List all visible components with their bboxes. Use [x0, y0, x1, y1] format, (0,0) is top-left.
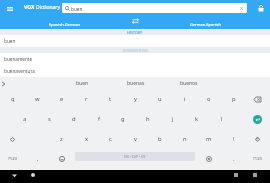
button[interactable]: r: [74, 89, 99, 109]
staticText: t: [109, 95, 112, 103]
staticText: c: [109, 135, 112, 143]
button[interactable]: z: [49, 129, 74, 149]
staticText: s: [48, 115, 51, 123]
button[interactable]: i: [172, 89, 197, 109]
staticText: .: [233, 155, 235, 163]
button[interactable]: d: [61, 109, 86, 129]
button[interactable]: Settings: [196, 149, 221, 169]
staticText: w: [35, 95, 40, 103]
button[interactable]: w: [25, 89, 50, 109]
button[interactable]: Spanish-German: [0, 15, 129, 29]
staticText: q: [11, 95, 15, 103]
button[interactable]: o: [196, 89, 221, 109]
button[interactable]: Recent apps: [251, 171, 259, 179]
button[interactable]: m: [196, 129, 221, 149]
staticText: e: [60, 95, 64, 103]
button[interactable]: x: [74, 129, 99, 149]
button[interactable]: ?: [245, 129, 270, 149]
button[interactable]: Clear search: [239, 6, 244, 11]
button[interactable]: buenos: [162, 77, 215, 89]
button[interactable]: t: [98, 89, 123, 109]
button[interactable]: q: [0, 89, 25, 109]
staticText: r: [85, 95, 88, 103]
button[interactable]: Backspace: [245, 89, 270, 109]
staticText: z: [60, 135, 63, 143]
button[interactable]: Navigation menu: [4, 3, 16, 15]
staticText: Dictionary: [36, 4, 60, 11]
button[interactable]: German-Spanish: [141, 15, 270, 29]
button[interactable]: buen: [0, 35, 270, 47]
staticText: p: [232, 95, 236, 103]
button[interactable]: ?123: [0, 149, 25, 169]
staticText: buenas: [127, 80, 145, 87]
button[interactable]: Enter: [245, 109, 270, 129]
button[interactable]: Shift: [0, 129, 25, 149]
staticText: VOX: [24, 4, 35, 11]
staticText: u: [158, 95, 162, 103]
button[interactable]: buen: [62, 3, 247, 13]
staticText: ?: [256, 135, 259, 143]
button[interactable]: v: [123, 129, 148, 149]
staticText: ?123: [8, 156, 18, 162]
button[interactable]: h: [135, 109, 160, 129]
staticText: m: [206, 135, 212, 143]
staticText: a: [23, 115, 27, 123]
button[interactable]: Emoji: [49, 149, 74, 169]
staticText: h: [146, 115, 150, 123]
staticText: l: [221, 115, 223, 123]
button[interactable]: Hide keyboard: [10, 171, 18, 179]
button[interactable]: Swap languages: [129, 15, 141, 27]
staticText: SUGGESTIONS: [123, 48, 148, 53]
staticText: ,: [37, 155, 39, 163]
button[interactable]: Back: [29, 171, 37, 179]
staticText: o: [207, 95, 211, 103]
button[interactable]: k: [184, 109, 209, 129]
button[interactable]: g: [110, 109, 135, 129]
staticText: Spanish-German: [49, 22, 80, 27]
staticText: d: [72, 115, 76, 123]
staticText: buen: [4, 38, 16, 44]
button[interactable]: c: [98, 129, 123, 149]
button[interactable]: ,: [25, 149, 50, 169]
button[interactable]: Shift: [245, 129, 270, 149]
button[interactable]: n: [172, 129, 197, 149]
staticText: buen: [76, 80, 89, 87]
button[interactable]: s: [37, 109, 62, 129]
staticText: n: [183, 135, 187, 143]
staticText: f: [98, 115, 100, 123]
button[interactable]: EN • ESP • ES: [75, 152, 195, 161]
staticText: g: [121, 115, 125, 123]
staticText: buen: [71, 6, 83, 12]
button[interactable]: l: [209, 109, 234, 129]
button[interactable]: y: [123, 89, 148, 109]
button[interactable]: buenamente: [0, 53, 270, 65]
staticText: ?123: [253, 156, 263, 162]
staticText: k: [195, 115, 199, 123]
staticText: HISTORY: [127, 30, 143, 35]
button[interactable]: u: [147, 89, 172, 109]
button[interactable]: !: [221, 129, 246, 149]
staticText: buenos: [180, 80, 198, 87]
staticText: !: [233, 135, 235, 143]
staticText: v: [134, 135, 137, 143]
button[interactable]: b: [147, 129, 172, 149]
button[interactable]: More suggestions: [0, 81, 6, 87]
button[interactable]: buenaventura: [0, 65, 270, 77]
button[interactable]: p: [221, 89, 246, 109]
staticText: German-Spanish: [190, 22, 221, 27]
button[interactable]: j: [160, 109, 185, 129]
staticText: y: [134, 95, 137, 103]
button[interactable]: Premium: [255, 2, 267, 14]
button[interactable]: a: [12, 109, 37, 129]
button[interactable]: buen: [55, 77, 109, 89]
staticText: EN • ESP • ES: [124, 154, 146, 159]
button[interactable]: e: [49, 89, 74, 109]
staticText: b: [158, 135, 162, 143]
staticText: buenamente: [4, 56, 33, 62]
staticText: x: [85, 135, 89, 143]
button[interactable]: f: [86, 109, 111, 129]
button[interactable]: ?123: [245, 149, 270, 169]
button[interactable]: buenas: [109, 77, 162, 89]
button[interactable]: Screenshot: [232, 171, 240, 179]
